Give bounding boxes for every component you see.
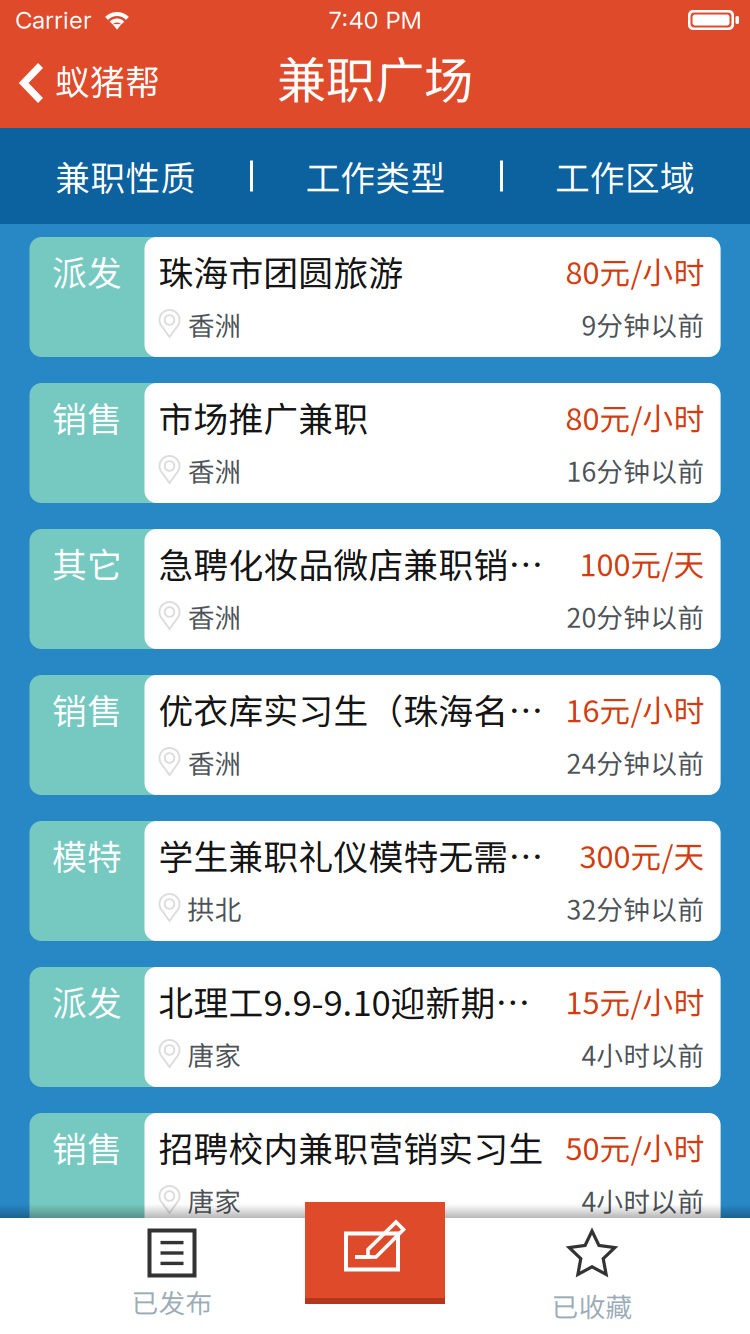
staticText: 7:40 PM	[328, 5, 421, 34]
staticText: 销售	[52, 392, 122, 442]
button[interactable]: 已发布	[62, 1218, 282, 1334]
staticText: 招聘校内兼职营销实习生	[158, 1122, 543, 1172]
staticText: 唐家	[187, 1181, 241, 1219]
staticText: 珠海市团圆旅游	[158, 246, 403, 296]
staticText: 急聘化妆品微店兼职销…	[158, 538, 543, 588]
button[interactable]: 销售	[29, 1113, 720, 1233]
button[interactable]: 派发	[29, 237, 720, 357]
button[interactable]: 其它	[29, 529, 720, 649]
staticText: 优衣库实习生（珠海名…	[158, 684, 543, 734]
staticText: 24分钟以前	[566, 743, 704, 781]
staticText: 香洲	[187, 743, 241, 781]
staticText: 唐家	[187, 1035, 241, 1073]
button[interactable]: 兼职性质	[0, 128, 251, 224]
staticText: 香洲	[187, 451, 241, 489]
staticText: 兼职广场	[277, 41, 473, 113]
staticText: 学生兼职礼仪模特无需…	[158, 830, 543, 880]
button[interactable]: 销售	[29, 675, 720, 795]
staticText: 销售	[52, 1122, 122, 1172]
button[interactable]: 销售	[29, 383, 720, 503]
staticText: 100元/天	[579, 541, 704, 585]
staticText: 兼职性质	[55, 151, 195, 201]
staticText: 工作区域	[555, 151, 695, 201]
staticText: 已发布	[131, 1282, 212, 1321]
button[interactable]: 蚁猪帮	[0, 40, 172, 128]
staticText: 香洲	[187, 597, 241, 635]
staticText: 20分钟以前	[566, 597, 704, 635]
staticText: 工作类型	[305, 151, 445, 201]
staticText: 80元/小时	[565, 249, 704, 293]
button[interactable]: 模特	[29, 821, 720, 941]
staticText: 32分钟以前	[566, 889, 704, 927]
staticText: 香洲	[187, 305, 241, 343]
staticText: 其它	[52, 538, 122, 588]
staticText: 模特	[52, 830, 122, 880]
staticText: 15元/小时	[565, 979, 704, 1023]
button[interactable]: 工作区域	[500, 128, 750, 224]
staticText: 市场推广兼职	[158, 392, 368, 442]
staticText: 300元/天	[579, 833, 704, 877]
staticText: 9分钟以前	[581, 305, 704, 343]
staticText: 80元/小时	[565, 395, 704, 439]
staticText: Carrier	[15, 5, 92, 34]
staticText: 已收藏	[551, 1286, 632, 1325]
button[interactable]: 已收藏	[482, 1218, 702, 1334]
staticText: 销售	[52, 684, 122, 734]
staticText: 拱北	[187, 889, 241, 927]
staticText: 派发	[52, 246, 122, 296]
staticText: 16分钟以前	[566, 451, 704, 489]
button[interactable]: 工作类型	[251, 128, 500, 224]
staticText: 4小时以前	[581, 1181, 704, 1219]
staticText: 50元/小时	[565, 1125, 704, 1169]
staticText: 16元/小时	[565, 687, 704, 731]
button[interactable]: 派发	[29, 967, 720, 1087]
staticText: 派发	[52, 976, 122, 1026]
staticText: 北理工9.9-9.10迎新期…	[158, 976, 530, 1026]
staticText: 蚁猪帮	[55, 55, 160, 105]
staticText: 4小时以前	[581, 1035, 704, 1073]
button[interactable]: Compose	[305, 1202, 445, 1304]
